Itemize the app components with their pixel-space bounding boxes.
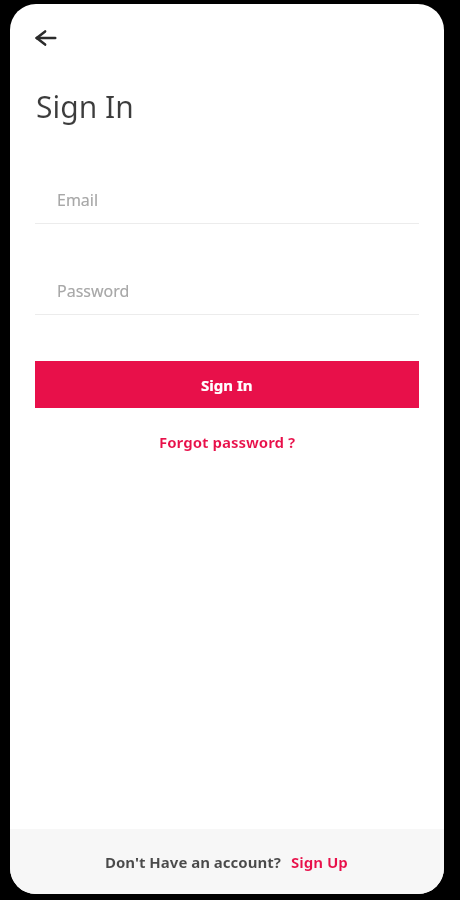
button[interactable]: Sign Up — [289, 848, 350, 876]
staticText: Forgot password ? — [159, 432, 296, 452]
staticText: Sign In — [36, 86, 134, 127]
staticText: Password — [57, 280, 130, 302]
button[interactable]: Back — [24, 16, 68, 60]
staticText: Sign Up — [291, 852, 348, 872]
button[interactable]: Email — [35, 189, 419, 224]
staticText: Don't Have an account? — [105, 852, 281, 872]
button[interactable]: Sign In — [35, 361, 419, 408]
staticText: Sign In — [201, 375, 253, 395]
staticText: Email — [57, 189, 99, 211]
button[interactable]: Password — [35, 280, 419, 315]
button[interactable]: Forgot password ? — [147, 428, 308, 456]
